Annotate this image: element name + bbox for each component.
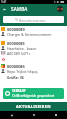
staticText: Repo Trijkot hépuş xyxy=(7,69,38,74)
button[interactable]: Profile xyxy=(55,4,64,13)
staticText: AKTUALISIEREN xyxy=(16,104,51,109)
button[interactable]: AKTUALISIEREN xyxy=(0,102,67,111)
staticText: 00000085 xyxy=(7,41,25,46)
button[interactable]: Back xyxy=(0,111,23,119)
button[interactable]: VERKAUF xyxy=(3,88,64,99)
staticText: ABC089 5471r xyxy=(7,51,31,56)
button[interactable]: Haarfarbe - braun xyxy=(0,45,67,51)
staticText: VERKAUF xyxy=(12,89,26,93)
button[interactable]: Größe: 36 xyxy=(0,74,67,80)
button[interactable]: ABC089 5471r xyxy=(0,50,67,56)
staticText: Charger & Seriennummern xyxy=(7,32,52,37)
button[interactable]: Home xyxy=(23,111,45,119)
button[interactable]: 00000085 xyxy=(0,40,67,46)
button[interactable]: Recents xyxy=(45,111,67,119)
button[interactable]: Charger & Seriennummern xyxy=(0,31,67,37)
staticText: 00000086 xyxy=(7,64,25,69)
button[interactable]: Repo Trijkot hépuş xyxy=(0,68,67,74)
staticText: SAMBA xyxy=(11,6,28,12)
button[interactable]: 00000089 xyxy=(0,26,67,32)
staticText: 00000089 xyxy=(7,27,25,32)
staticText: Chlift erfolgreich gespeichert xyxy=(12,94,55,98)
staticText: 9:41 xyxy=(1,0,7,4)
staticText: Barcode scannen xyxy=(19,18,46,22)
button[interactable]: Barcode scannen xyxy=(3,16,64,23)
button[interactable]: 00000086 xyxy=(0,63,67,69)
button[interactable] xyxy=(0,56,67,62)
staticText: Haarfarbe - braun xyxy=(7,46,37,51)
button[interactable]: Back xyxy=(0,5,8,13)
staticText: Größe: 36 xyxy=(7,75,24,80)
